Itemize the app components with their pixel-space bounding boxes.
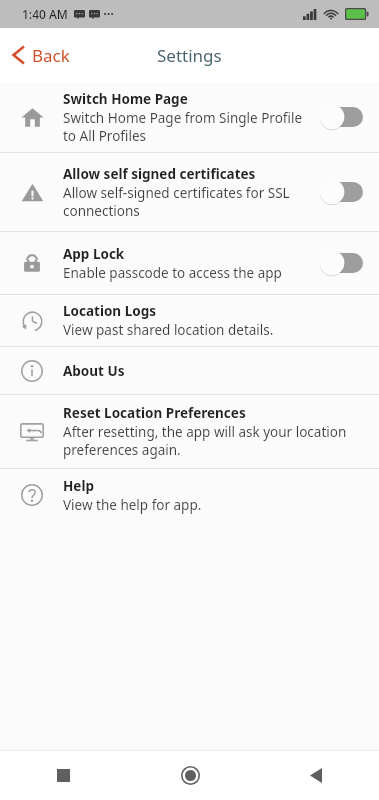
staticText: Enable passcode to access the app [63,264,282,282]
staticText: View the help for app. [63,496,202,514]
staticText: 1:40 AM [22,6,68,22]
staticText: Switch Home Page from Single Profile to … [63,109,303,145]
staticText: About Us [63,362,125,380]
staticText: Settings [157,44,222,67]
button[interactable]: App Lock [0,232,379,294]
staticText: View past shared location details. [63,321,274,339]
staticText: After resetting, the app will ask your l… [63,423,347,459]
button[interactable]: Home [127,751,253,800]
staticText: Reset Location Preferences [63,404,246,422]
button[interactable]: Toggle [319,179,363,205]
button[interactable]: Switch Home Page [0,82,379,152]
button[interactable]: Reset Location Preferences [0,395,379,468]
button[interactable]: Help [0,469,379,521]
button[interactable]: Allow self signed certificates [0,153,379,231]
staticText: Allow self signed certificates [63,165,256,183]
button[interactable]: Back [253,751,379,800]
button[interactable]: Back [0,28,84,82]
staticText: App Lock [63,245,125,263]
staticText: Back [32,44,70,67]
staticText: Location Logs [63,302,156,320]
staticText: Switch Home Page [63,90,188,108]
staticText: Help [63,477,94,495]
staticText: Allow self-signed certificates for SSL c… [63,184,290,220]
button[interactable]: Location Logs [0,295,379,346]
button[interactable]: Toggle [319,250,363,276]
button[interactable]: Toggle [319,104,363,130]
button[interactable]: Recents [0,751,127,800]
button[interactable]: About Us [0,347,379,394]
